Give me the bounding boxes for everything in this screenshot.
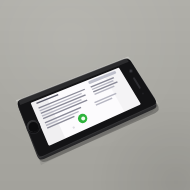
button[interactable] [0, 0, 190, 190]
button[interactable]: Photo of a black smartphone on a grey su… [0, 0, 190, 190]
